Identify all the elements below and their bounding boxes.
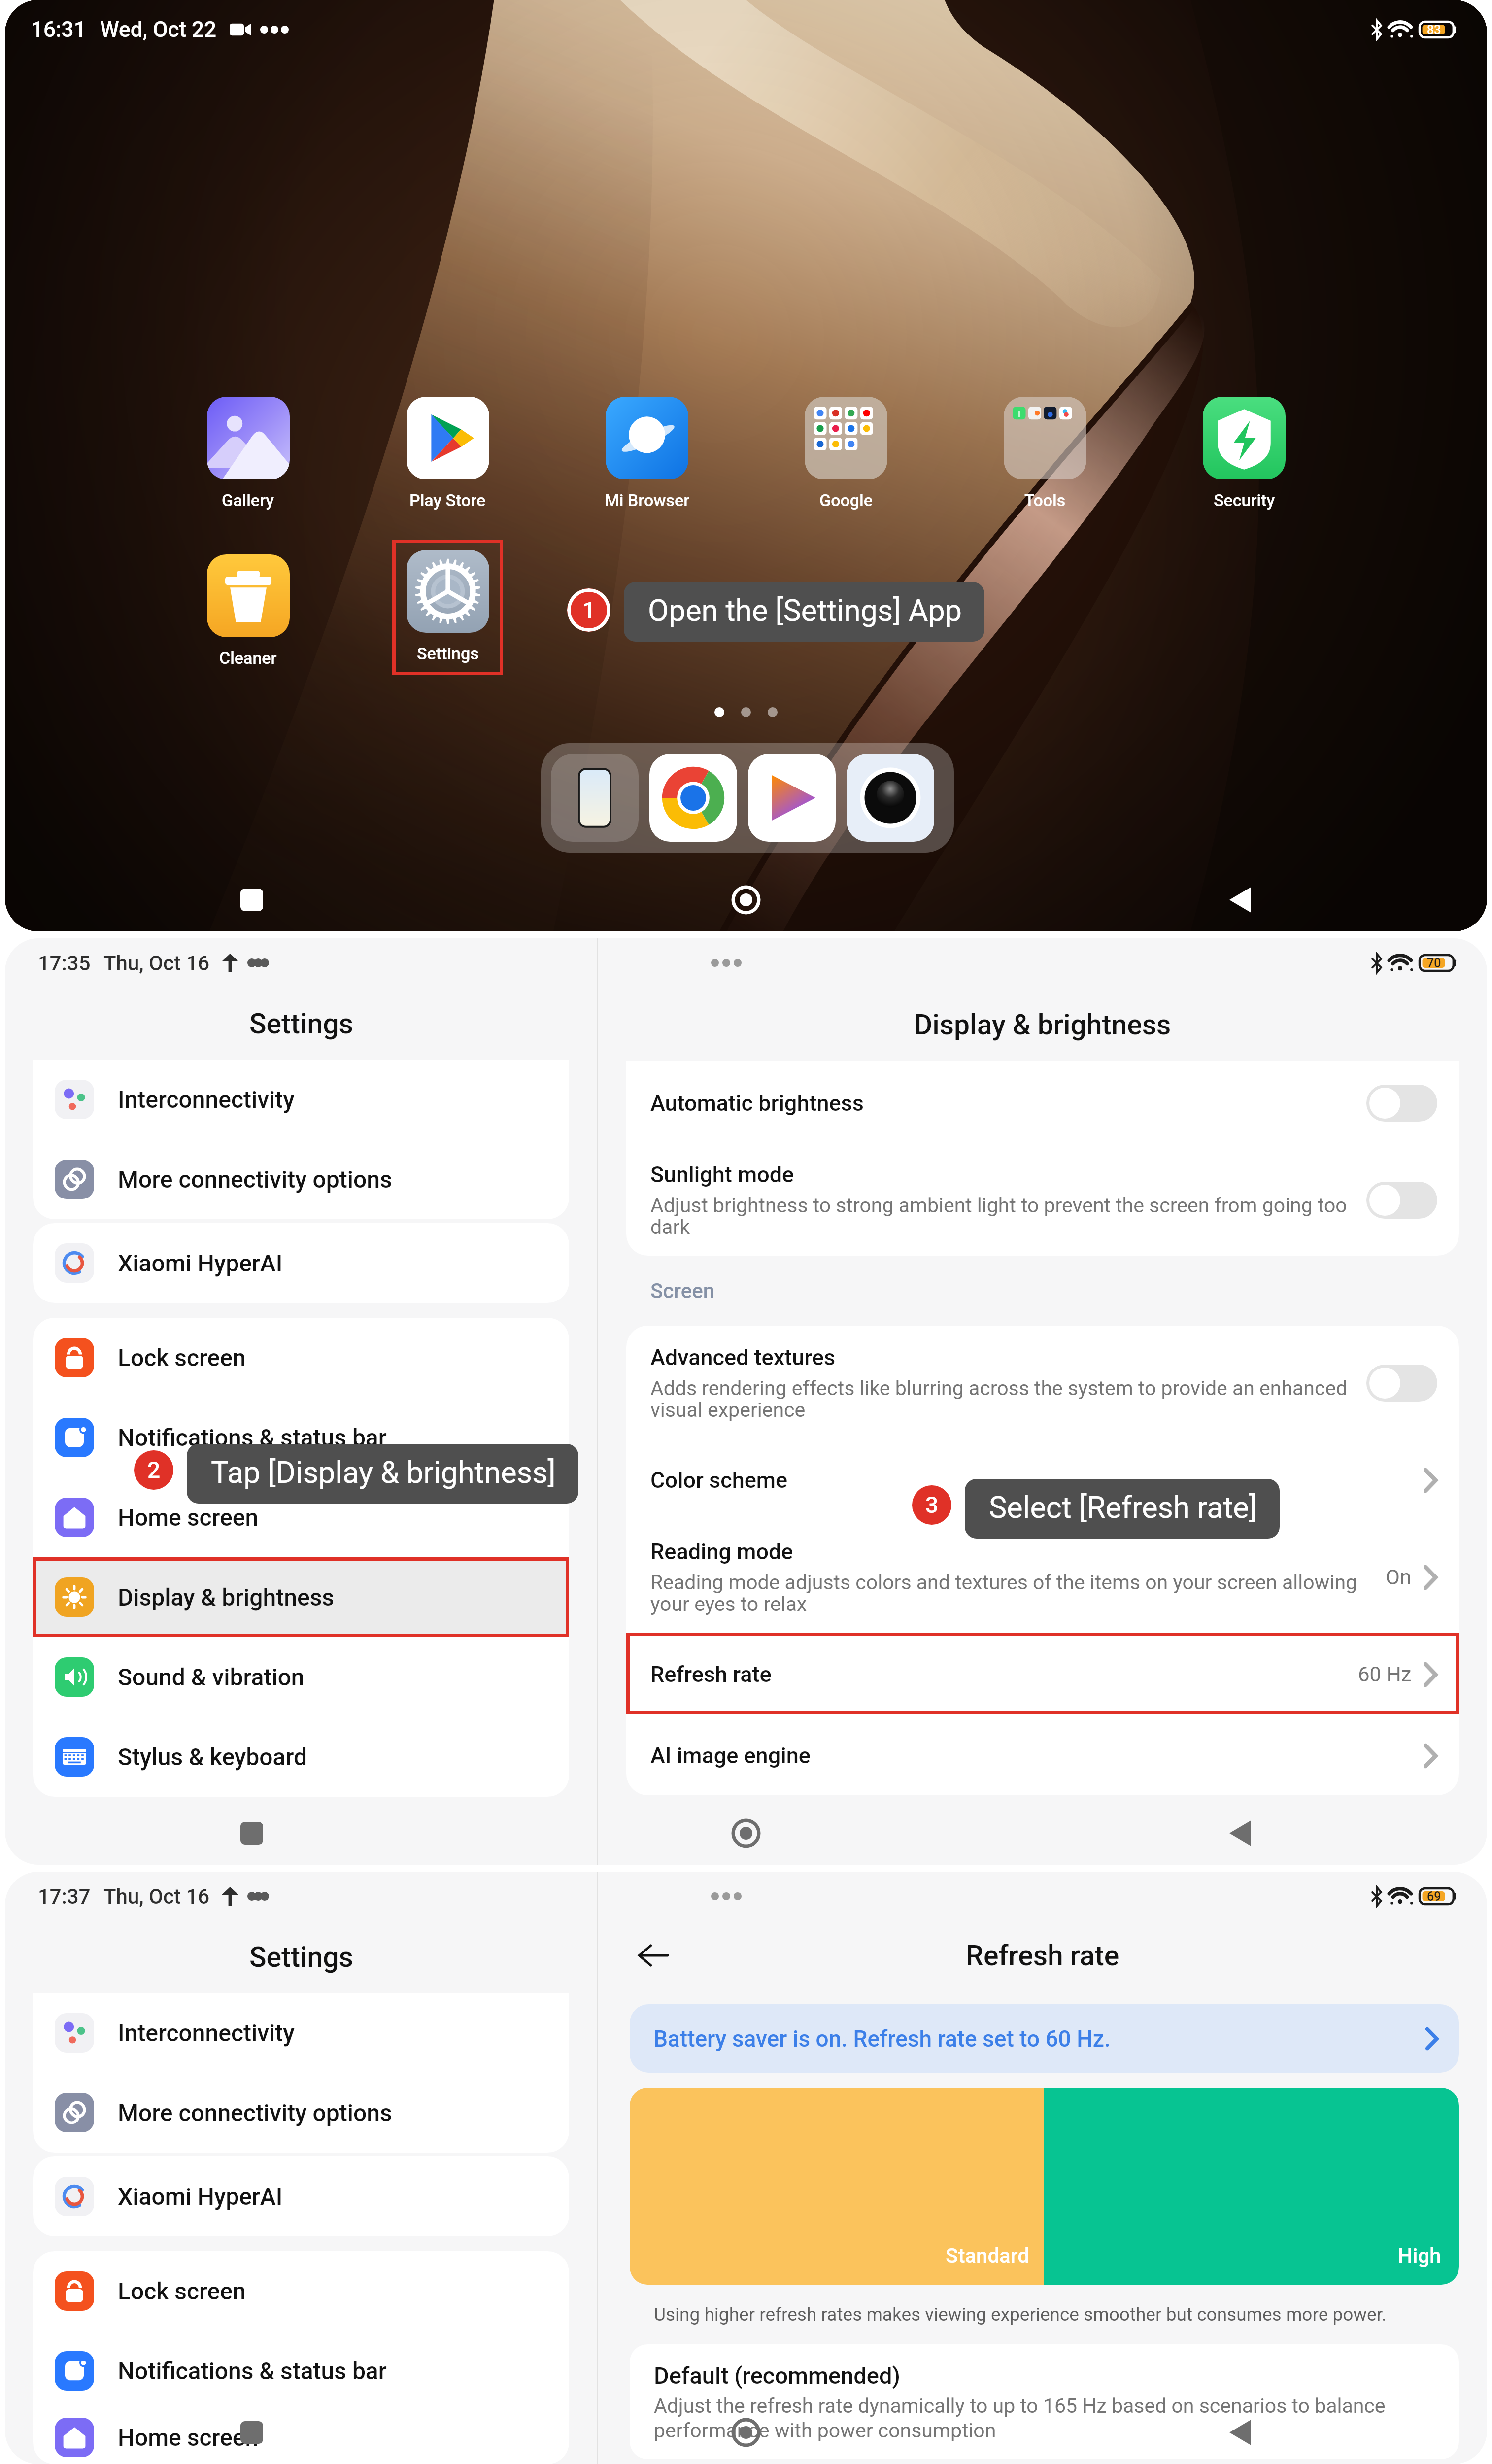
staticText: Lock screen <box>118 2277 246 2305</box>
button[interactable]: More connectivity options <box>33 1139 569 1219</box>
staticText: 2 <box>147 1457 161 1483</box>
button[interactable]: Play Store <box>348 397 547 510</box>
staticText: 1 <box>582 597 596 623</box>
button[interactable]: Interconnectivity <box>33 1060 569 1139</box>
staticText: Stylus & keyboard <box>118 1743 307 1771</box>
staticText: Notifications & status bar <box>118 2357 387 2385</box>
staticText: Notifications & status bar <box>118 1424 387 1451</box>
staticText: Interconnectivity <box>118 1086 295 1113</box>
button[interactable]: Gallery <box>148 397 348 510</box>
staticText: Advanced textures <box>650 1344 836 1370</box>
button[interactable]: Back <box>1229 2420 1251 2445</box>
staticText: Thu, Oct 16 <box>103 1884 210 1909</box>
button[interactable]: Refresh rate <box>626 1633 1459 1714</box>
button[interactable]: Xiaomi HyperAI <box>33 1223 569 1303</box>
staticText: 17:37 <box>38 1884 91 1909</box>
staticText: Refresh rate <box>650 1661 772 1687</box>
button[interactable]: Notifications & status bar <box>33 2331 569 2411</box>
button[interactable]: Sunlight mode <box>626 1143 1459 1256</box>
staticText: Tap [Display & brightness] <box>211 1455 556 1490</box>
button[interactable]: Chrome <box>649 754 737 842</box>
staticText: Color scheme <box>650 1467 788 1493</box>
staticText: Settings <box>249 1941 353 1974</box>
staticText: Screen <box>650 1279 715 1303</box>
staticText: Google <box>819 490 873 510</box>
button[interactable]: Mi Browser <box>547 397 746 510</box>
button[interactable]: High <box>1044 2088 1459 2285</box>
staticText: 69 <box>1427 1889 1441 1904</box>
staticText: More connectivity options <box>118 1165 392 1193</box>
button[interactable]: Interconnectivity <box>33 1993 569 2073</box>
button[interactable]: Back <box>638 1944 669 1967</box>
staticText: Automatic brightness <box>650 1090 864 1116</box>
button[interactable]: Back <box>1229 887 1251 913</box>
button[interactable]: Cleaner <box>148 554 348 668</box>
button[interactable]: Display & brightness <box>33 1557 569 1637</box>
button[interactable]: Reading mode <box>626 1520 1459 1633</box>
staticText: Mi Browser <box>605 490 690 510</box>
staticText: Settings <box>249 1007 353 1040</box>
staticText: More connectivity options <box>118 2099 392 2126</box>
button[interactable]: Advanced textures <box>626 1326 1459 1438</box>
button[interactable]: Lock screen <box>33 2251 569 2331</box>
button[interactable]: Stylus & keyboard <box>33 1717 569 1797</box>
button[interactable]: Battery saver is on. Refresh rate set to… <box>630 2004 1459 2073</box>
staticText: Thu, Oct 16 <box>103 951 210 975</box>
staticText: Tools <box>1024 490 1066 510</box>
staticText: Default (recommended) <box>654 2362 900 2389</box>
button[interactable]: Sound & vibration <box>33 1637 569 1717</box>
staticText: Settings <box>417 644 479 663</box>
button[interactable]: Default (recommended) <box>630 2344 1459 2459</box>
staticText: Wed, Oct 22 <box>100 17 217 42</box>
button[interactable]: More connectivity options <box>33 2073 569 2153</box>
button[interactable]: Recents <box>240 1822 263 1845</box>
button[interactable]: Home <box>732 1819 760 1848</box>
staticText: Sound & vibration <box>118 1663 305 1691</box>
button[interactable]: Home screen <box>33 2411 569 2464</box>
staticText: AI image engine <box>650 1743 811 1769</box>
button[interactable]: Standard <box>630 2088 1044 2285</box>
button[interactable]: Automatic brightness <box>626 1061 1459 1143</box>
button[interactable]: Camera <box>847 754 934 842</box>
staticText: Interconnectivity <box>118 2019 295 2047</box>
button[interactable]: Recents <box>240 889 263 911</box>
button[interactable]: Home <box>732 886 760 914</box>
staticText: Reading mode adjusts colors and textures… <box>650 1571 1363 1616</box>
button[interactable]: Security <box>1145 397 1344 510</box>
staticText: Battery saver is on. Refresh rate set to… <box>653 2025 1425 2052</box>
button[interactable]: Google <box>746 397 946 510</box>
staticText: Display & brightness <box>914 1008 1171 1041</box>
staticText: 60 Hz <box>1358 1662 1412 1686</box>
button[interactable]: Color scheme <box>626 1438 1459 1520</box>
button[interactable]: Phone Manager <box>551 754 639 842</box>
button[interactable]: Mi Video <box>748 754 836 842</box>
button[interactable]: Back <box>1229 1820 1251 1846</box>
button[interactable]: Tools <box>946 397 1145 510</box>
staticText: 83 <box>1427 23 1441 37</box>
button[interactable]: Recents <box>240 2421 263 2444</box>
staticText: Select [Refresh rate] <box>989 1490 1257 1525</box>
staticText: Adjust brightness to strong ambient ligh… <box>650 1194 1356 1239</box>
button[interactable]: Notifications & status bar <box>33 1398 569 1477</box>
staticText: Lock screen <box>118 1344 246 1371</box>
staticText: Display & brightness <box>118 1583 335 1611</box>
button[interactable]: Settings <box>392 540 503 675</box>
staticText: 3 <box>925 1492 939 1518</box>
staticText: High <box>1398 2244 1441 2268</box>
button[interactable]: Home screen <box>33 1477 569 1557</box>
staticText: Play Store <box>409 490 486 510</box>
staticText: 70 <box>1427 956 1441 970</box>
staticText: Adds rendering effects like blurring acr… <box>650 1376 1356 1422</box>
staticText: Open the [Settings] App <box>648 593 962 628</box>
staticText: Gallery <box>222 490 274 510</box>
button[interactable]: AI image engine <box>626 1714 1459 1795</box>
button[interactable]: Lock screen <box>33 1318 569 1398</box>
button[interactable]: Xiaomi HyperAI <box>33 2156 569 2236</box>
button[interactable]: Home <box>732 2418 760 2447</box>
staticText: Security <box>1214 490 1275 510</box>
staticText: Using higher refresh rates makes viewing… <box>654 2304 1387 2325</box>
staticText: On <box>1386 1565 1412 1589</box>
staticText: Adjust the refresh rate dynamically to u… <box>654 2394 1437 2442</box>
staticText: 17:35 <box>38 951 91 975</box>
staticText: 16:31 <box>31 17 86 42</box>
